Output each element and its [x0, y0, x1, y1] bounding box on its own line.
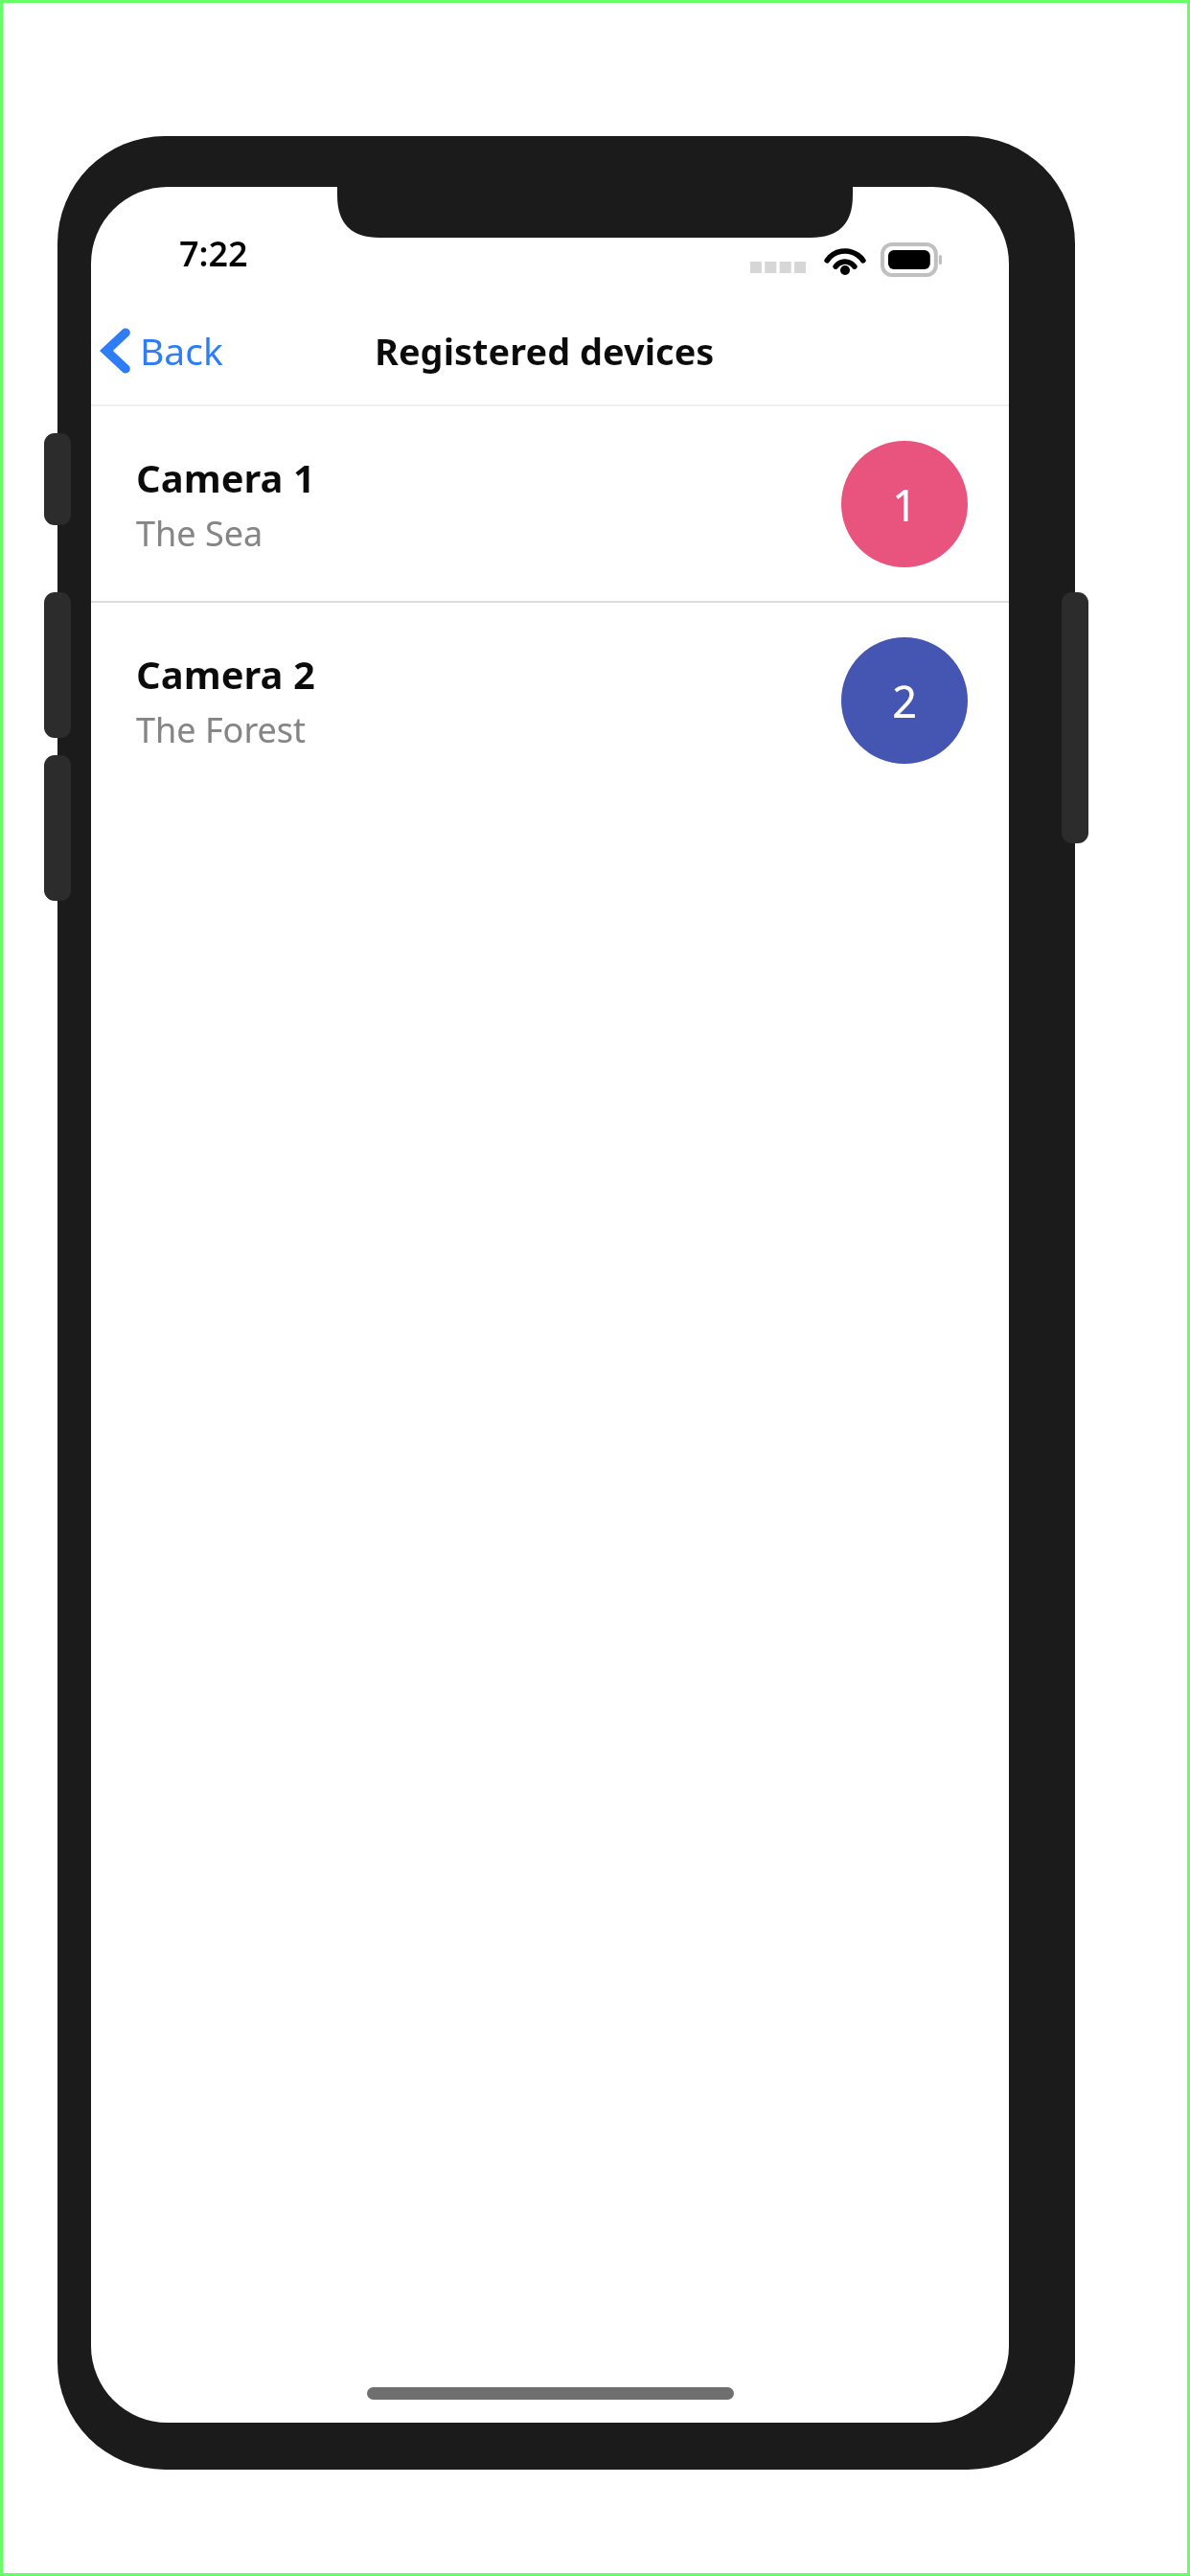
button[interactable]: Camera 2: [91, 603, 1009, 797]
staticText: Back: [140, 325, 223, 376]
button[interactable]: Back: [91, 315, 239, 385]
staticText: 7:22: [179, 230, 248, 277]
button[interactable]: Camera 1: [91, 406, 1009, 601]
staticText: The Forest: [136, 706, 307, 753]
staticText: The Sea: [136, 510, 263, 557]
staticText: Camera 2: [136, 648, 315, 700]
staticText: Registered devices: [375, 326, 715, 376]
staticText: 2: [892, 672, 917, 730]
staticText: 1: [892, 475, 917, 534]
other: Device side buttons: [0, 0, 1190, 2576]
staticText: Camera 1: [136, 451, 315, 503]
